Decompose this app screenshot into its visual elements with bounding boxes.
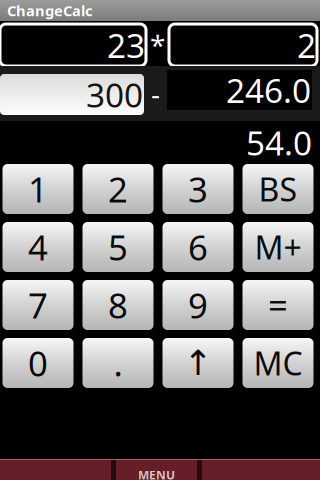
- staticText: ChangeCalc: [7, 1, 93, 20]
- staticText: 8: [108, 282, 128, 328]
- button[interactable]: 7: [2, 280, 73, 330]
- staticText: 1: [28, 166, 48, 212]
- staticText: 6: [188, 224, 208, 270]
- staticText: 7: [28, 282, 48, 328]
- button[interactable]: 5: [82, 222, 153, 272]
- staticText: ↑: [183, 343, 212, 383]
- staticText: MENU: [138, 467, 175, 480]
- staticText: 3: [188, 166, 208, 212]
- button[interactable]: 1: [2, 164, 73, 214]
- staticText: 300: [86, 72, 143, 117]
- staticText: 2: [108, 166, 128, 212]
- button[interactable]: 2: [82, 164, 153, 214]
- staticText: 23: [107, 23, 145, 67]
- staticText: 246.0: [226, 68, 311, 112]
- button[interactable]: 9: [162, 280, 233, 330]
- button[interactable]: .: [82, 338, 153, 388]
- staticText: 9: [188, 282, 208, 328]
- button[interactable]: 246.0: [167, 70, 312, 110]
- staticText: 5: [108, 224, 128, 270]
- button[interactable]: BS: [242, 164, 313, 214]
- staticText: BS: [258, 168, 297, 210]
- button[interactable]: =: [242, 280, 313, 330]
- button[interactable]: MC: [242, 338, 313, 388]
- button[interactable]: 300: [0, 74, 144, 115]
- button[interactable]: M+: [242, 222, 313, 272]
- button[interactable]: 8: [82, 280, 153, 330]
- button[interactable]: MENU: [116, 460, 197, 480]
- staticText: .: [113, 340, 122, 386]
- staticText: 54.0: [246, 120, 312, 165]
- staticText: *: [150, 26, 165, 64]
- button[interactable]: 23: [0, 24, 146, 66]
- button[interactable]: 4: [2, 222, 73, 272]
- button[interactable]: 2: [169, 24, 317, 66]
- staticText: -: [151, 75, 160, 112]
- button[interactable]: 6: [162, 222, 233, 272]
- staticText: M+: [254, 226, 301, 268]
- staticText: 4: [28, 224, 48, 270]
- staticText: MC: [253, 342, 302, 384]
- staticText: =: [268, 282, 288, 328]
- staticText: 2: [297, 23, 316, 67]
- button[interactable]: ↑: [162, 338, 233, 388]
- staticText: 0: [28, 340, 48, 386]
- button[interactable]: 3: [162, 164, 233, 214]
- button[interactable]: 0: [2, 338, 73, 388]
